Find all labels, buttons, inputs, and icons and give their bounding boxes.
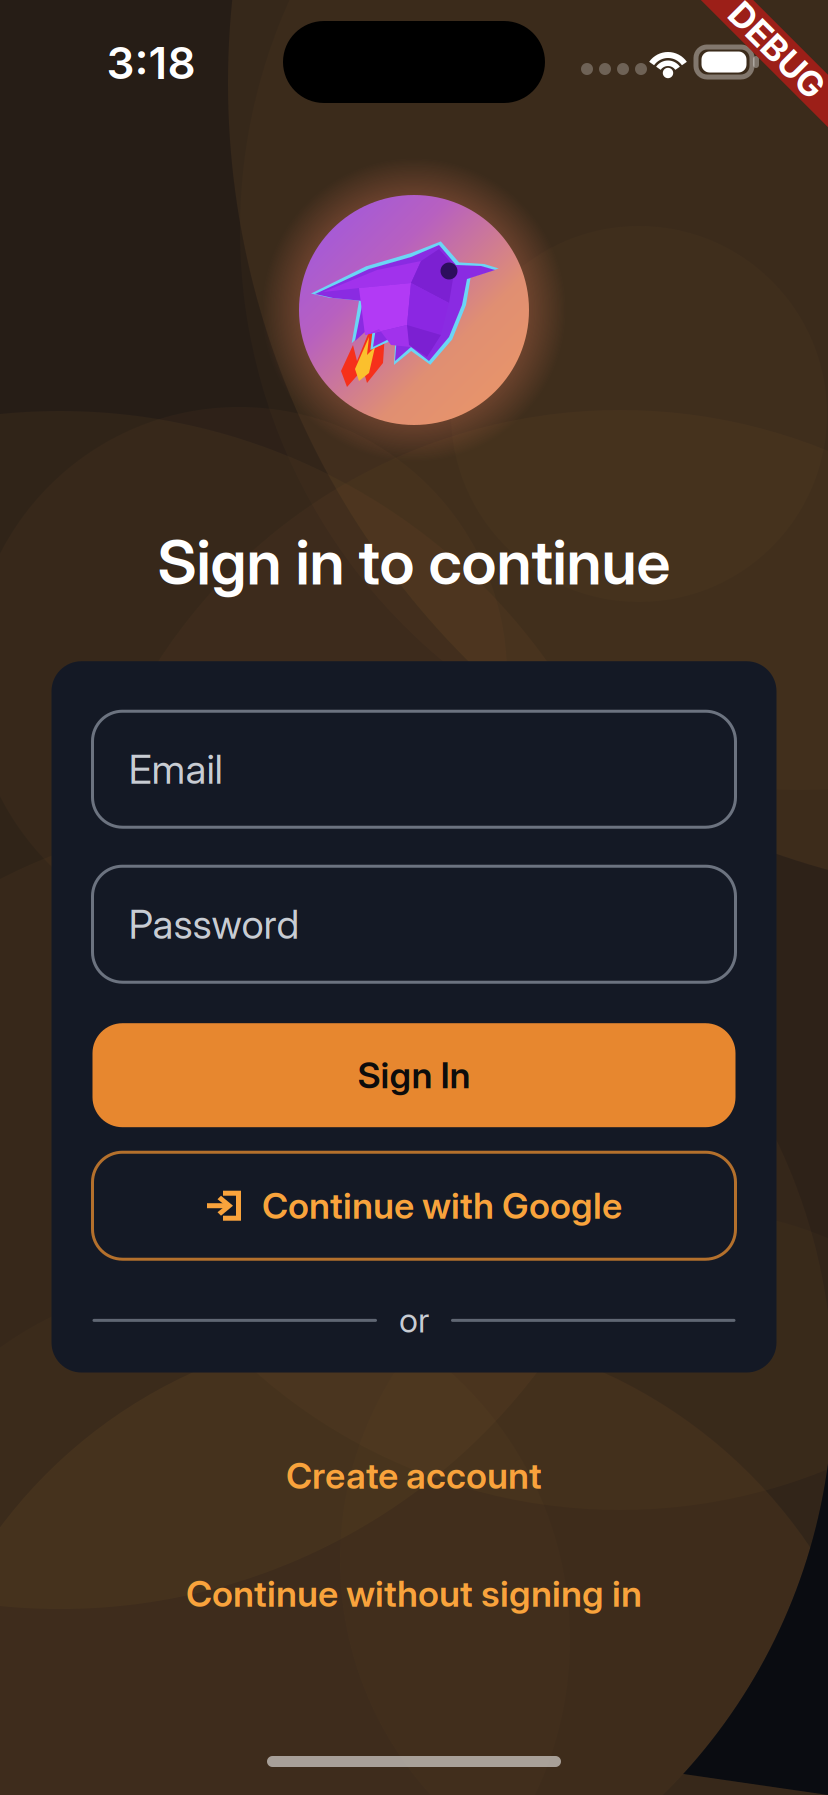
button[interactable]: Continue without signing in xyxy=(134,1558,694,1628)
staticText: Sign in to continue xyxy=(157,525,670,599)
staticText: DEBUG xyxy=(717,29,828,71)
staticText: Continue without signing in xyxy=(186,1572,642,1615)
staticText: Create account xyxy=(286,1454,542,1497)
staticText: Email xyxy=(128,745,222,793)
staticText: 3:18 xyxy=(106,36,195,90)
staticText: Continue with Google xyxy=(262,1184,622,1227)
staticText: Sign In xyxy=(357,1053,470,1097)
staticText: or xyxy=(399,1300,429,1340)
button[interactable]: Sign In xyxy=(92,1023,735,1127)
staticText: Password xyxy=(128,900,299,948)
button[interactable]: Create account xyxy=(214,1440,614,1510)
button[interactable]: Continue with Google xyxy=(92,1152,735,1259)
